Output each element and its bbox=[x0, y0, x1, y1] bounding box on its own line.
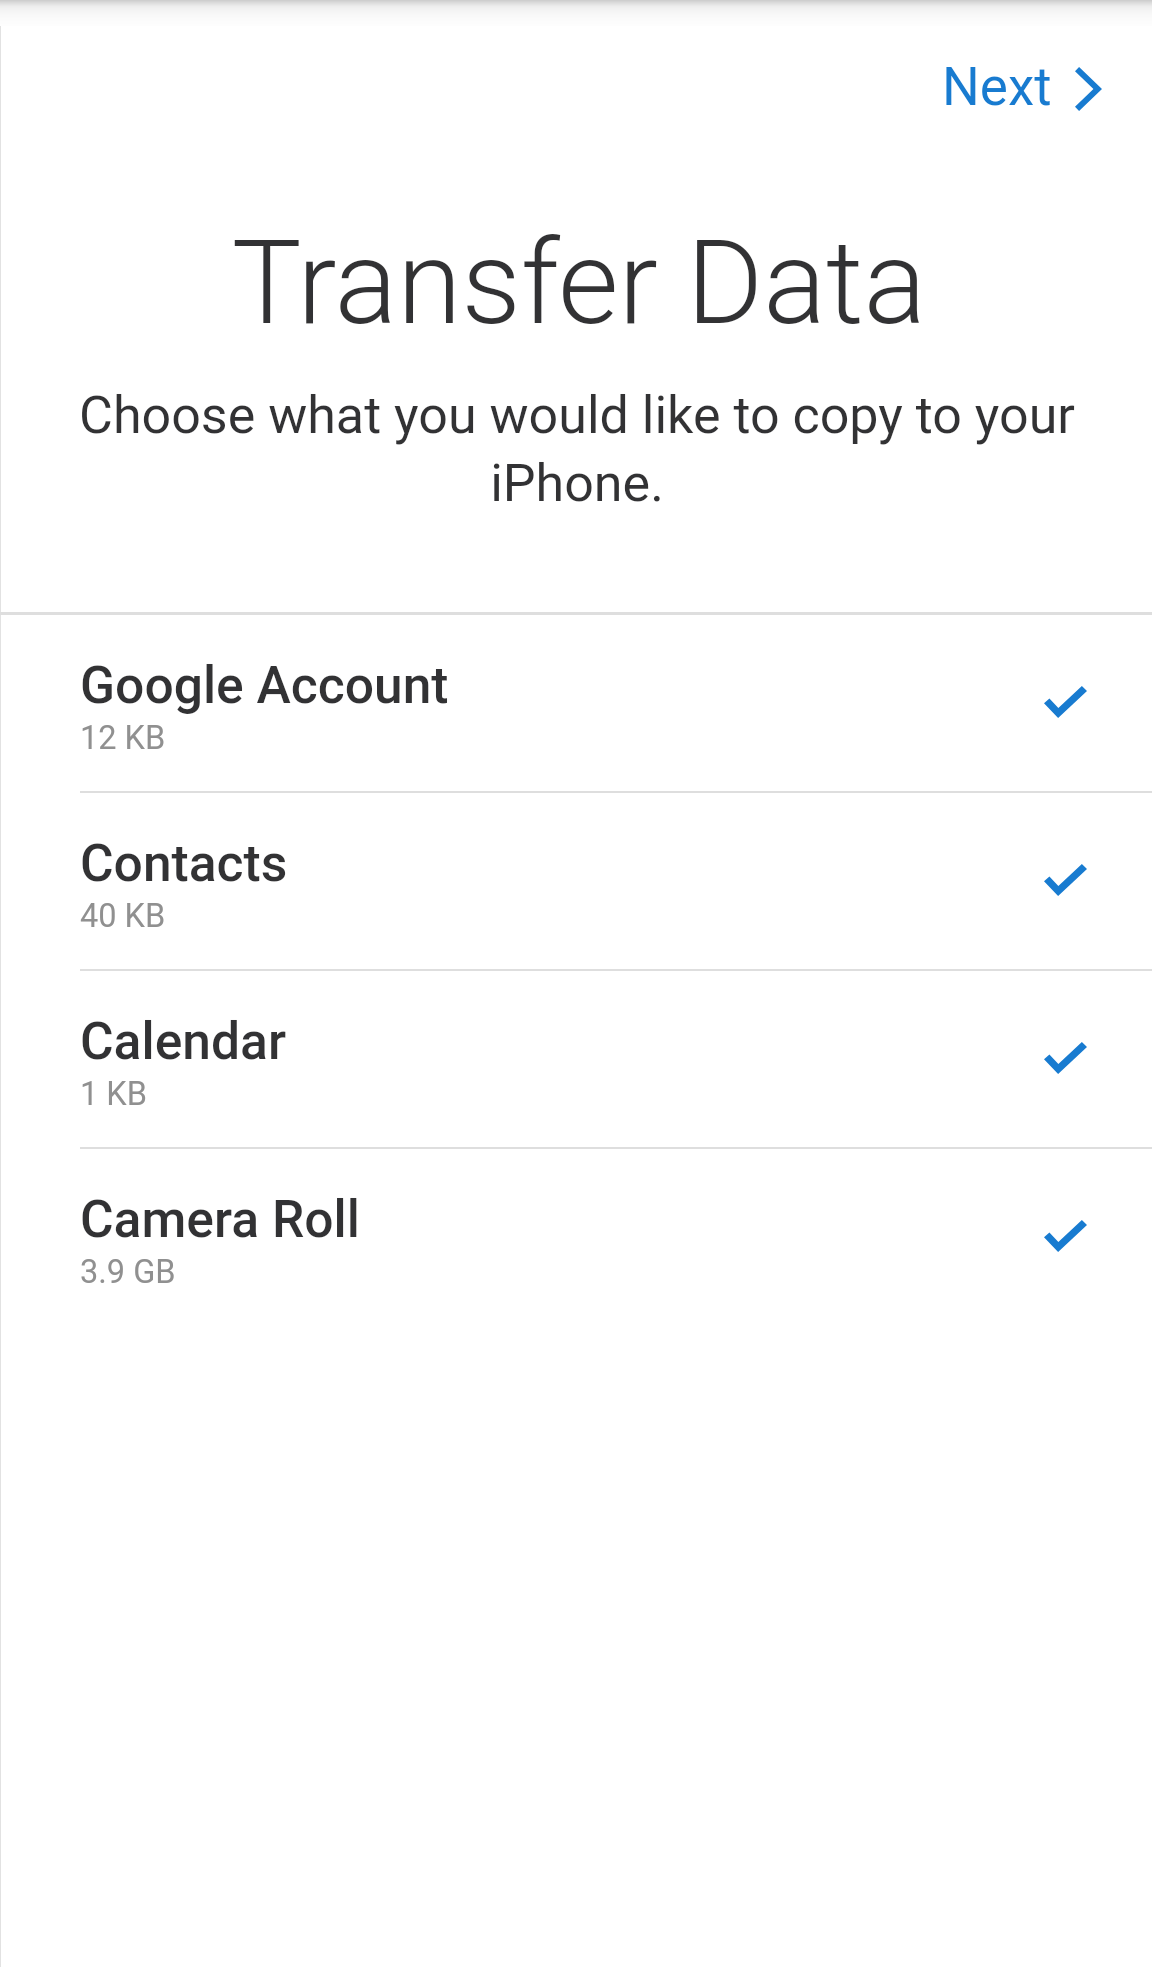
staticText: Calendar bbox=[80, 1011, 287, 1071]
button[interactable]: Contacts bbox=[0, 793, 1152, 969]
staticText: Contacts bbox=[80, 833, 288, 893]
staticText: Camera Roll bbox=[80, 1189, 360, 1249]
button[interactable]: Google Account bbox=[0, 615, 1152, 791]
staticText: Google Account bbox=[80, 655, 449, 715]
button[interactable]: Camera Roll bbox=[0, 1149, 1152, 1325]
other: Selected bbox=[1044, 1220, 1087, 1252]
staticText: 3.9 GB bbox=[80, 1253, 176, 1291]
other: Selected bbox=[1044, 1042, 1087, 1074]
staticText: 1 KB bbox=[80, 1075, 147, 1113]
other: Selected bbox=[1044, 686, 1087, 718]
staticText: 12 KB bbox=[80, 719, 166, 757]
other: Selected bbox=[1044, 864, 1087, 896]
other: Next bbox=[1075, 67, 1102, 111]
staticText: 40 KB bbox=[80, 897, 166, 935]
staticText: Choose what you would like to copy to yo… bbox=[63, 385, 1091, 514]
staticText: Transfer Data bbox=[3, 214, 1152, 351]
button[interactable]: Next bbox=[902, 38, 1152, 136]
button[interactable]: Calendar bbox=[0, 971, 1152, 1147]
staticText: Next bbox=[942, 56, 1052, 118]
